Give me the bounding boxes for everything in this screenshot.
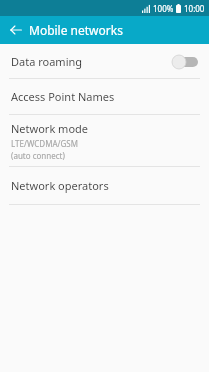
- button[interactable]: Access Point Names: [0, 79, 209, 114]
- staticText: Mobile networks: [29, 22, 123, 38]
- staticText: LTE/WCDMA/GSM: [11, 138, 78, 149]
- button[interactable]: Data roaming toggle: [172, 55, 198, 69]
- staticText: Access Point Names: [11, 89, 115, 104]
- staticText: Network operators: [11, 178, 109, 193]
- staticText: Data roaming: [11, 54, 83, 69]
- button[interactable]: Network operators: [0, 167, 209, 204]
- button[interactable]: Network mode: [0, 115, 209, 166]
- staticText: 10:00: [184, 3, 205, 14]
- staticText: 100%: [153, 3, 174, 14]
- staticText: Network mode: [11, 121, 89, 136]
- button[interactable]: Back: [6, 20, 26, 40]
- button[interactable]: Data roaming: [0, 45, 209, 78]
- staticText: (auto connect): [11, 150, 65, 161]
